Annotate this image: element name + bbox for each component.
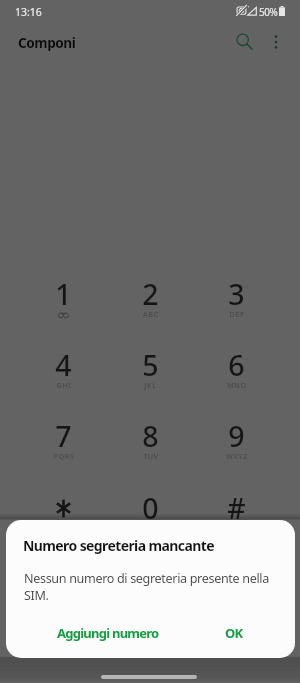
- staticText: 9: [228, 417, 245, 456]
- staticText: PQRS: [53, 451, 75, 461]
- button[interactable]: 6: [193, 341, 280, 413]
- staticText: 0: [142, 489, 159, 528]
- staticText: 7: [55, 417, 72, 456]
- staticText: 13:16: [15, 5, 42, 19]
- staticText: 5: [142, 346, 159, 385]
- button[interactable]: 0: [107, 484, 194, 556]
- button[interactable]: More options: [259, 25, 292, 58]
- button[interactable]: Search: [226, 25, 259, 58]
- button[interactable]: 8: [107, 412, 194, 484]
- staticText: 50%: [259, 5, 278, 19]
- button[interactable]: [20, 484, 107, 556]
- staticText: 8: [142, 417, 159, 456]
- staticText: WXYZ: [226, 451, 248, 461]
- staticText: Componi: [18, 33, 76, 52]
- staticText: 1: [55, 275, 72, 314]
- button[interactable]: 4: [20, 341, 107, 413]
- button[interactable]: 7: [20, 412, 107, 484]
- button[interactable]: Aggiungi numero: [51, 619, 165, 647]
- button[interactable]: 3: [193, 270, 280, 342]
- staticText: 2: [142, 275, 159, 314]
- staticText: 6: [228, 346, 245, 385]
- staticText: DEF: [229, 309, 245, 319]
- staticText: ABC: [143, 309, 159, 319]
- staticText: Numero segreteria mancante: [23, 536, 215, 555]
- staticText: TUV: [143, 451, 159, 461]
- button[interactable]: #: [193, 484, 280, 556]
- staticText: Aggiungi numero: [57, 624, 159, 642]
- staticText: MNO: [227, 380, 247, 390]
- button[interactable]: 1: [20, 270, 107, 342]
- staticText: Nessun numero di segreteria presente nel…: [24, 570, 274, 604]
- button[interactable]: 2: [107, 270, 194, 342]
- staticText: GHI: [56, 380, 72, 390]
- button[interactable]: 5: [107, 341, 194, 413]
- button[interactable]: 9: [193, 412, 280, 484]
- staticText: 3: [228, 275, 245, 314]
- staticText: JKL: [144, 380, 157, 390]
- staticText: 4: [55, 346, 72, 385]
- staticText: #: [227, 489, 246, 528]
- staticText: OK: [225, 624, 243, 642]
- button[interactable]: OK: [216, 619, 252, 647]
